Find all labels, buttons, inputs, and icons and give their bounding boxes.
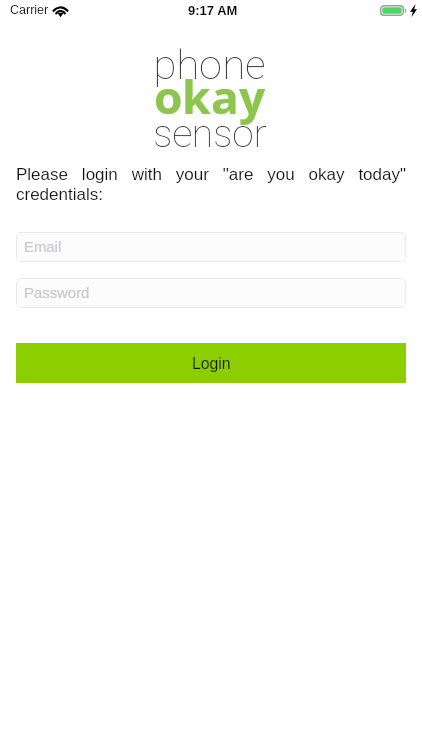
staticText: Please login with your "are you okay tod… xyxy=(16,165,406,203)
button[interactable]: Login xyxy=(16,343,406,383)
other: phone okay sensor xyxy=(0,0,422,160)
staticText: Email xyxy=(24,239,62,256)
other: Battery charging xyxy=(380,5,406,16)
staticText: Carrier xyxy=(10,3,49,17)
other: Wi-Fi xyxy=(53,5,68,16)
staticText: 9:17 AM xyxy=(188,3,238,18)
staticText: Login xyxy=(192,355,231,373)
other: Charging xyxy=(410,4,417,17)
staticText: Password xyxy=(24,285,90,302)
button[interactable]: Password xyxy=(16,278,406,308)
button[interactable]: Email xyxy=(16,232,406,262)
